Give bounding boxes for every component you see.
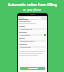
button[interactable]: Autofill: [44, 34, 46, 36]
button[interactable]: Form field: [19, 34, 46, 36]
button[interactable]: Form field: [19, 40, 46, 42]
button[interactable]: Form field: [19, 28, 46, 30]
button[interactable]: Form field: [19, 46, 46, 48]
staticText: Automatic online form filling: [8, 2, 57, 7]
button[interactable]: [20, 67, 45, 70]
staticText: on your phone: [23, 8, 41, 12]
button[interactable]: Address bar: [18, 16, 47, 19]
